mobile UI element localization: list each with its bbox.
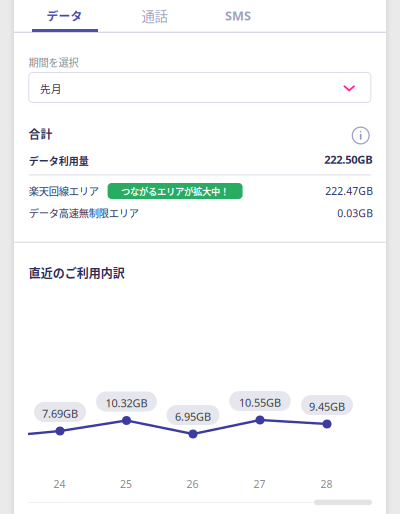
staticText: データ高速無制限エリア xyxy=(29,205,139,220)
staticText: 先月 xyxy=(40,81,62,96)
staticText: 合計 xyxy=(29,125,53,142)
staticText: 通話 xyxy=(141,6,167,25)
staticText: データ xyxy=(46,7,82,24)
staticText: 26 xyxy=(186,477,198,491)
staticText: 222.50GB xyxy=(324,152,372,167)
button[interactable]: 通話 xyxy=(114,0,194,31)
button[interactable]: データ xyxy=(24,0,104,31)
staticText: データ利用量 xyxy=(29,153,89,168)
staticText: 28 xyxy=(320,477,332,491)
button[interactable]: SMS xyxy=(198,0,278,31)
button[interactable]: データ利用量について xyxy=(352,126,370,144)
staticText: 222.47GB xyxy=(325,184,373,198)
staticText: 25 xyxy=(120,477,132,491)
staticText: 0.03GB xyxy=(337,206,373,220)
staticText: 9.45GB xyxy=(309,399,345,414)
staticText: 6.95GB xyxy=(175,409,211,424)
staticText: 7.69GB xyxy=(42,406,78,421)
button[interactable]: 先月 xyxy=(29,72,371,102)
staticText: 24 xyxy=(53,477,65,491)
staticText: 27 xyxy=(253,477,265,491)
staticText: 10.32GB xyxy=(105,396,147,411)
staticText: 10.55GB xyxy=(239,395,281,410)
staticText: SMS xyxy=(225,7,251,24)
staticText: 期間を選択 xyxy=(28,54,78,69)
staticText: 楽天回線エリア xyxy=(29,183,99,198)
staticText: つながるエリアが拡大中！ xyxy=(121,184,229,198)
staticText: 直近のご利用内訳 xyxy=(29,264,125,281)
